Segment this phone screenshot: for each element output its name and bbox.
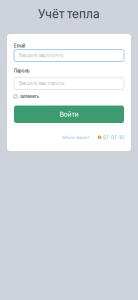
staticText: 67-07-10 (103, 135, 124, 140)
staticText: Войти (59, 110, 78, 118)
staticText: Пароль (14, 68, 29, 73)
staticText: Забыли пароль? (61, 135, 89, 140)
button[interactable]: 67-07-10 (97, 135, 124, 140)
staticText: Учёт тепла (38, 7, 100, 21)
staticText: Запомнить (20, 94, 39, 99)
staticText: Email (14, 43, 25, 48)
button[interactable]: Забыли пароль? (61, 135, 89, 140)
button[interactable]: Запомнить (14, 94, 124, 99)
button[interactable]: Войти (14, 105, 124, 123)
staticText: Введите ваш пароль (19, 81, 64, 86)
staticText: Введите вашу почту (19, 53, 63, 58)
